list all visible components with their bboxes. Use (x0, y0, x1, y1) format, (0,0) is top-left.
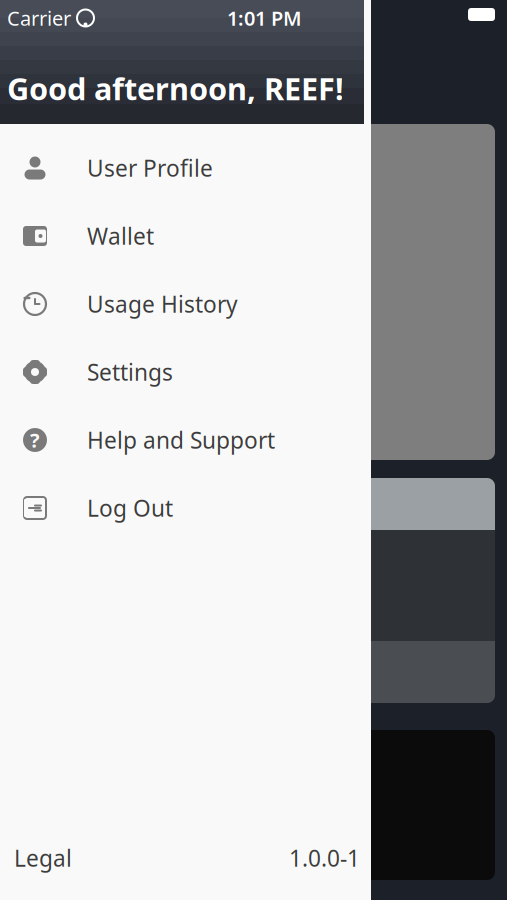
staticText: REEF locations. (147, 422, 298, 450)
staticText: User Profile (87, 153, 213, 183)
button[interactable]: Settings (0, 338, 371, 406)
staticText: Legal (14, 843, 72, 873)
staticText: Help and Support (87, 425, 275, 455)
button[interactable]: User Profile (0, 134, 371, 202)
staticText: Usage History (87, 289, 238, 319)
button[interactable]: Usage History (0, 270, 371, 338)
button[interactable]: Legal (0, 835, 72, 881)
staticText: Log Out (87, 493, 173, 523)
staticText: ? (30, 427, 40, 453)
staticText: 1:01 PM (227, 5, 302, 31)
staticText: 1.0.0-1 (289, 843, 360, 873)
button[interactable]: Log Out (0, 474, 371, 542)
button[interactable]: ? (0, 406, 371, 474)
staticText: Good afternoon, REEF! (7, 68, 344, 109)
staticText: Wallet (87, 221, 154, 251)
staticText: Settings (87, 357, 173, 387)
button[interactable]: Wallet (0, 202, 371, 270)
staticText: Carrier (7, 5, 71, 31)
